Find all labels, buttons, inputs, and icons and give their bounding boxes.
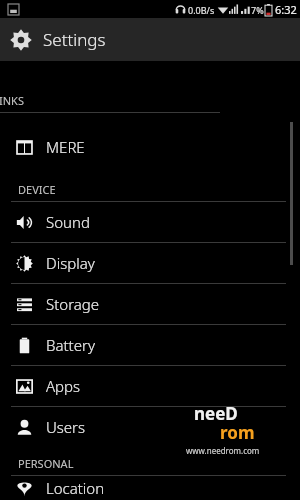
staticText: Storage [46,294,100,314]
staticText: 0.0B/s [188,4,215,16]
button[interactable]: Apps [0,366,300,406]
staticText: 6:32 [275,2,297,17]
staticText: Settings [43,28,106,51]
other: Settings [10,29,32,51]
button[interactable]: MERE [0,127,300,167]
staticText: www.needrom.com [186,445,260,456]
staticText: MERE [46,137,85,157]
staticText: Apps [46,376,81,396]
button[interactable]: Sound [0,202,300,242]
staticText: INKS [0,93,24,108]
button[interactable]: Storage [0,284,300,324]
staticText: Display [46,253,95,273]
staticText: Battery [46,335,95,355]
button[interactable]: Display [0,243,300,283]
staticText: neeD [194,402,238,425]
button[interactable]: Users [0,407,300,447]
staticText: Sound [46,212,90,232]
staticText: rom [220,421,255,444]
staticText: Users [46,417,86,437]
button[interactable]: Location [0,476,300,500]
staticText: PERSONAL [18,456,74,471]
button[interactable]: Battery [0,325,300,365]
staticText: Location [46,478,105,498]
button[interactable]: Settings [0,18,300,61]
staticText: 7% [251,4,264,16]
staticText: DEVICE [18,182,56,197]
